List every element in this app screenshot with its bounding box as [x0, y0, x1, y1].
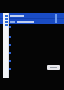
- button[interactable]: [0, 13, 64, 24]
- button[interactable]: [47, 65, 60, 70]
- button[interactable]: Sidebar item: [3, 13, 9, 78]
